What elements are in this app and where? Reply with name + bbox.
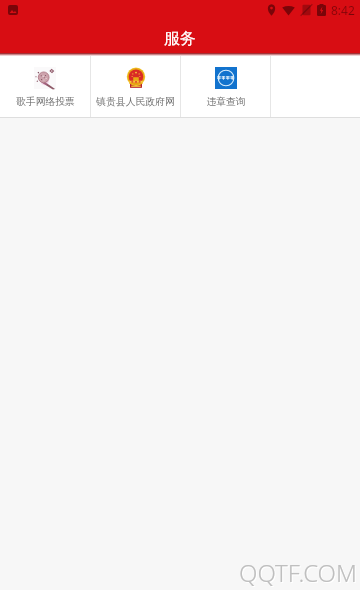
- staticText: 歌手网络投票: [16, 96, 75, 108]
- other: Photo notification: [8, 5, 18, 15]
- staticText: 8:42: [331, 2, 355, 18]
- staticText: 违章查询: [206, 96, 246, 108]
- button[interactable]: 违章查询: [181, 56, 270, 117]
- staticText: 服务: [164, 29, 196, 49]
- staticText: 镇贵县人民政府网: [96, 96, 175, 108]
- button[interactable]: 歌手网络投票: [0, 56, 90, 117]
- staticText: QQTF.COM: [240, 557, 358, 590]
- staticText: QQTF.COM: [239, 556, 357, 589]
- button[interactable]: 镇贵县人民政府网: [91, 56, 180, 117]
